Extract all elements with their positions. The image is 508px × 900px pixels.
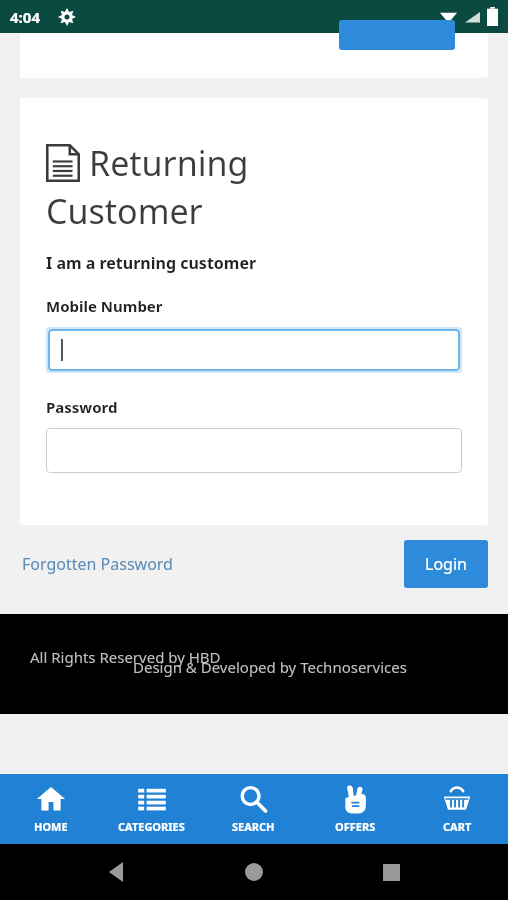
staticText: Returning	[89, 140, 249, 186]
staticText: 4:04	[10, 7, 40, 27]
staticText: OFFERS	[335, 819, 376, 834]
staticText: Password	[46, 397, 118, 417]
staticText: CATEGORIES	[118, 819, 185, 834]
button[interactable]: Forgotten Password	[18, 549, 177, 579]
staticText: CART	[443, 819, 472, 834]
staticText: SEARCH	[232, 819, 275, 834]
button[interactable]: CATEGORIES	[101, 774, 202, 844]
button[interactable]: HOME	[0, 774, 101, 844]
button[interactable]: Login	[404, 540, 488, 588]
button[interactable]	[48, 329, 460, 371]
button[interactable]: Home	[234, 852, 274, 892]
button[interactable]: OFFERS	[304, 774, 406, 844]
button[interactable]: Back	[97, 852, 137, 892]
staticText: Forgotten Password	[22, 553, 173, 575]
staticText: All Rights Reserved by HBD	[30, 647, 221, 667]
staticText: HOME	[34, 819, 68, 834]
button[interactable]	[46, 428, 462, 473]
staticText: Login	[425, 553, 467, 575]
staticText: Design & Developed by Technoservices	[133, 657, 407, 677]
other: Settings	[58, 8, 76, 26]
button[interactable]: Recent apps	[371, 852, 411, 892]
staticText: Mobile Number	[46, 296, 163, 316]
staticText: Customer	[46, 188, 203, 234]
button[interactable]: SEARCH	[202, 774, 304, 844]
button[interactable]	[339, 20, 455, 50]
button[interactable]: CART	[406, 774, 508, 844]
staticText: I am a returning customer	[46, 252, 257, 274]
